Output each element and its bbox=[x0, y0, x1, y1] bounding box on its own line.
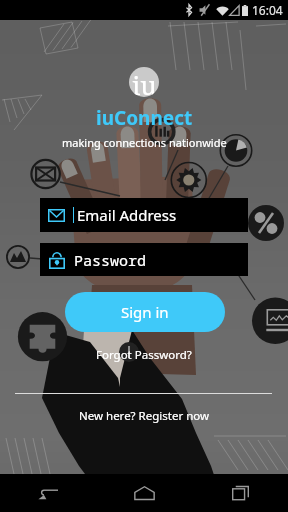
staticText: New here? Register now bbox=[79, 408, 210, 424]
button[interactable]: Back bbox=[29, 474, 67, 512]
button[interactable]: Sign in bbox=[65, 292, 225, 332]
button[interactable]: Email Address bbox=[40, 198, 248, 232]
button[interactable]: New here? Register now bbox=[73, 406, 216, 426]
button[interactable]: Forgot Password? bbox=[90, 345, 198, 365]
staticText: Password bbox=[74, 250, 147, 270]
button[interactable]: Home bbox=[125, 474, 163, 512]
staticText: making connections nationwide bbox=[62, 135, 227, 150]
staticText: Sign in bbox=[121, 302, 169, 322]
staticText: iuConnect bbox=[96, 105, 193, 131]
button[interactable]: Recent apps bbox=[221, 474, 259, 512]
staticText: Email Address bbox=[77, 205, 177, 225]
staticText: 16:04 bbox=[252, 2, 283, 18]
button[interactable]: Password bbox=[40, 243, 248, 276]
staticText: Forgot Password? bbox=[96, 347, 192, 363]
staticText: iu bbox=[132, 67, 157, 97]
